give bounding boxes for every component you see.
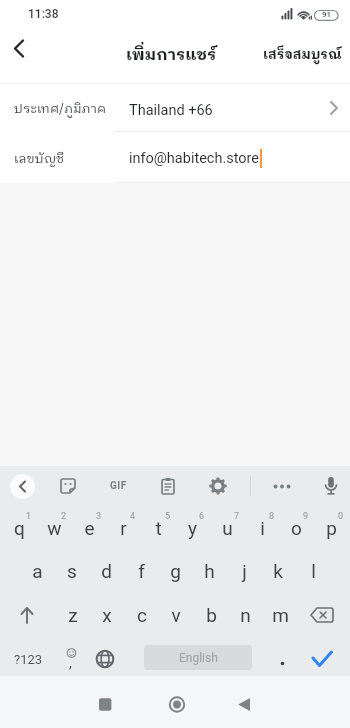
staticText: o xyxy=(291,517,302,539)
button[interactable] xyxy=(268,633,296,676)
button[interactable]: e xyxy=(72,506,106,549)
button[interactable]: t xyxy=(141,506,175,549)
staticText: m xyxy=(272,604,289,626)
button[interactable]: c xyxy=(125,591,159,633)
staticText: y xyxy=(188,517,197,539)
button[interactable] xyxy=(317,472,345,500)
button[interactable]: ประเทศ/ภูมิภาค xyxy=(0,84,350,131)
staticText: 5 xyxy=(165,511,171,522)
staticText: 0 xyxy=(338,511,344,522)
staticText: Thailand +66 xyxy=(129,102,213,119)
button[interactable]: n xyxy=(228,591,262,633)
button[interactable]: w xyxy=(37,506,71,549)
staticText: p xyxy=(326,517,337,539)
button[interactable]: ?123 xyxy=(6,633,50,676)
button[interactable]: x xyxy=(90,591,124,633)
staticText: v xyxy=(171,604,181,626)
button[interactable] xyxy=(4,591,48,633)
button[interactable]: p xyxy=(314,506,348,549)
staticText: t xyxy=(155,517,162,539)
staticText: ประเทศ/ภูมิภาค xyxy=(14,98,107,119)
staticText: g xyxy=(170,560,181,582)
button[interactable]: y xyxy=(175,506,209,549)
button[interactable] xyxy=(10,474,35,499)
staticText: 1 xyxy=(26,511,32,522)
staticText: u xyxy=(222,517,233,539)
button[interactable]: i xyxy=(245,506,279,549)
button[interactable] xyxy=(154,472,182,500)
button[interactable]: v xyxy=(159,591,193,633)
staticText: เพิ่มการแชร์ xyxy=(126,42,217,69)
button[interactable]: GIF xyxy=(104,472,132,500)
staticText: s xyxy=(67,560,77,582)
staticText: 3 xyxy=(96,511,102,522)
button[interactable] xyxy=(224,682,264,722)
button[interactable] xyxy=(91,633,119,676)
staticText: d xyxy=(101,560,112,582)
button[interactable]: s xyxy=(55,549,89,591)
button[interactable]: o xyxy=(279,506,313,549)
button[interactable]: k xyxy=(261,549,295,591)
staticText: x xyxy=(102,604,112,626)
button[interactable] xyxy=(54,472,82,500)
staticText: h xyxy=(204,560,215,582)
button[interactable]: j xyxy=(227,549,261,591)
button[interactable] xyxy=(157,682,197,722)
button[interactable]: d xyxy=(89,549,123,591)
staticText: f xyxy=(138,560,145,582)
button[interactable] xyxy=(204,472,232,500)
staticText: e xyxy=(84,517,95,539)
button[interactable]: g xyxy=(158,549,192,591)
button[interactable]: m xyxy=(263,591,297,633)
button[interactable] xyxy=(85,682,125,722)
staticText: 7 xyxy=(234,511,240,522)
staticText: เสร็จสมบูรณ์ xyxy=(263,44,342,66)
staticText: 9 xyxy=(303,511,309,522)
button[interactable]: , xyxy=(57,633,85,676)
button[interactable]: h xyxy=(192,549,226,591)
button[interactable]: f xyxy=(124,549,158,591)
button[interactable]: u xyxy=(210,506,244,549)
staticText: GIF xyxy=(110,480,127,492)
staticText: 6 xyxy=(199,511,205,522)
staticText: a xyxy=(32,560,43,582)
button[interactable] xyxy=(268,472,296,500)
staticText: 11:38 xyxy=(28,7,59,21)
button[interactable]: เลขบัญชี xyxy=(0,132,350,182)
staticText: 4 xyxy=(130,511,136,522)
staticText: 91 xyxy=(322,10,332,19)
staticText: ?123 xyxy=(14,652,43,667)
staticText: q xyxy=(14,517,25,539)
staticText: b xyxy=(206,604,217,626)
staticText: l xyxy=(311,560,316,582)
staticText: info@habitech.store xyxy=(129,150,260,167)
staticText: r xyxy=(120,517,127,539)
staticText: j xyxy=(242,560,247,582)
button[interactable]: l xyxy=(296,549,330,591)
staticText: เลขบัญชี xyxy=(14,148,65,169)
staticText: c xyxy=(137,604,147,626)
button[interactable] xyxy=(300,591,344,633)
button[interactable]: English xyxy=(144,645,252,670)
button[interactable] xyxy=(302,633,342,676)
staticText: , xyxy=(69,655,72,672)
staticText: 8 xyxy=(269,511,275,522)
staticText: 2 xyxy=(61,511,67,522)
staticText: w xyxy=(47,517,62,539)
staticText: k xyxy=(273,560,283,582)
staticText: English xyxy=(179,651,218,665)
button[interactable]: z xyxy=(56,591,90,633)
button[interactable] xyxy=(0,26,44,83)
button[interactable]: q xyxy=(2,506,36,549)
staticText: n xyxy=(240,604,251,626)
staticText: i xyxy=(260,517,265,539)
button[interactable]: b xyxy=(194,591,228,633)
staticText: z xyxy=(68,604,78,626)
button[interactable]: a xyxy=(20,549,54,591)
button[interactable]: เสร็จสมบูรณ์ xyxy=(271,44,350,66)
button[interactable]: r xyxy=(106,506,140,549)
